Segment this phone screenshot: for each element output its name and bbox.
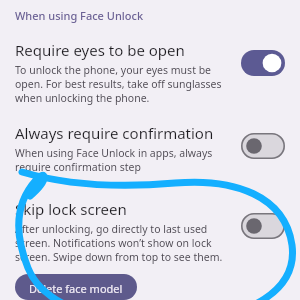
staticText: Skip lock screen [15, 199, 127, 219]
staticText: Always require confirmation [15, 123, 214, 143]
button[interactable]: Require eyes to be open [15, 40, 285, 105]
staticText: To unlock the phone, your eyes must be o… [15, 63, 233, 105]
staticText: When using Face Unlock [15, 8, 144, 23]
button[interactable]: Skip lock screen [15, 199, 285, 264]
button[interactable]: Always require confirmation [241, 133, 285, 159]
staticText: Require eyes to be open [15, 40, 185, 60]
button[interactable]: Delete face model [15, 274, 137, 300]
button[interactable]: Always require confirmation [15, 123, 285, 174]
staticText: Delete face model [29, 281, 123, 293]
button[interactable]: Skip lock screen [241, 213, 285, 239]
button[interactable]: Require eyes to be open [241, 50, 285, 76]
staticText: After unlocking, go directly to last use… [15, 222, 233, 264]
staticText: When using Face Unlock in apps, always r… [15, 146, 233, 174]
